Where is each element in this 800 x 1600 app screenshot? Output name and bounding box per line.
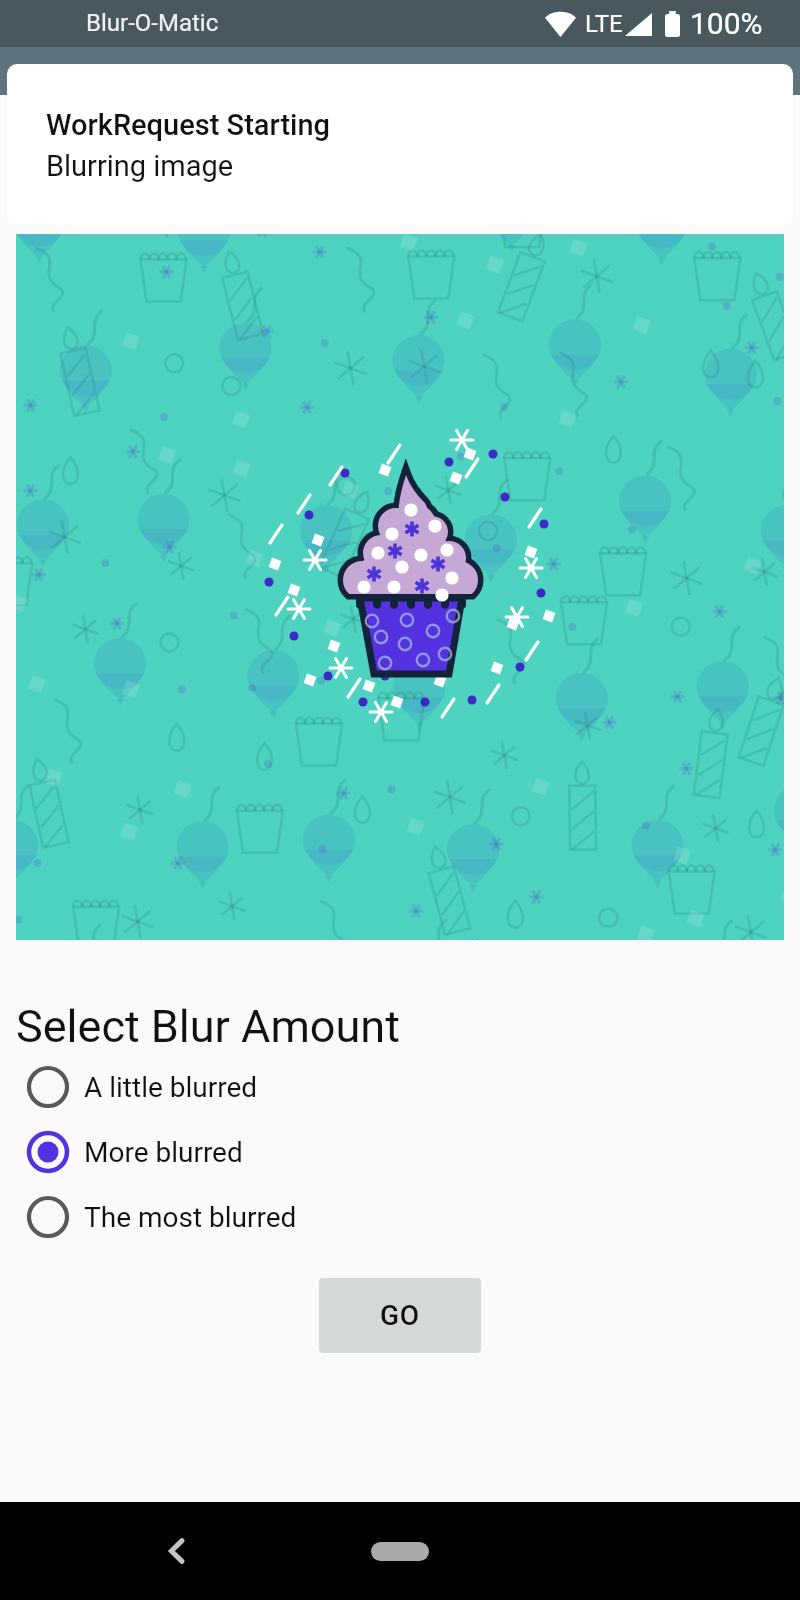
staticText: 100% — [690, 6, 763, 41]
button[interactable]: WorkRequest Starting — [7, 64, 793, 225]
button[interactable]: The most blurred — [0, 1185, 800, 1249]
button[interactable]: GO — [319, 1278, 481, 1353]
button[interactable]: More blurred — [0, 1120, 800, 1184]
staticText: LTE — [585, 10, 623, 38]
button[interactable]: Home — [371, 1542, 429, 1561]
staticText: The most blurred — [84, 1201, 297, 1234]
button[interactable]: Back — [152, 1526, 202, 1576]
staticText: More blurred — [84, 1136, 243, 1169]
staticText: WorkRequest Starting — [46, 108, 331, 142]
staticText: Blur-O-Matic — [86, 9, 219, 37]
button[interactable]: A little blurred — [0, 1055, 800, 1119]
staticText: GO — [380, 1299, 420, 1332]
staticText: Blurring image — [46, 149, 234, 183]
staticText: A little blurred — [84, 1071, 258, 1104]
staticText: Select Blur Amount — [16, 1000, 400, 1053]
